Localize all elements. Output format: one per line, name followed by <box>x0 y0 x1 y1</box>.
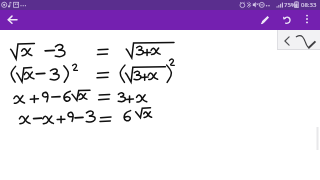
button[interactable]: Pen tool <box>294 30 320 50</box>
staticText: 75% <box>284 1 296 9</box>
button[interactable]: Undo <box>276 10 298 30</box>
button[interactable]: Collapse toolbar <box>277 30 294 50</box>
staticText: 08:33 <box>301 1 317 9</box>
button[interactable]: Back <box>3 10 23 30</box>
button[interactable]: Edit <box>254 10 276 30</box>
button[interactable]: More options <box>298 10 316 28</box>
